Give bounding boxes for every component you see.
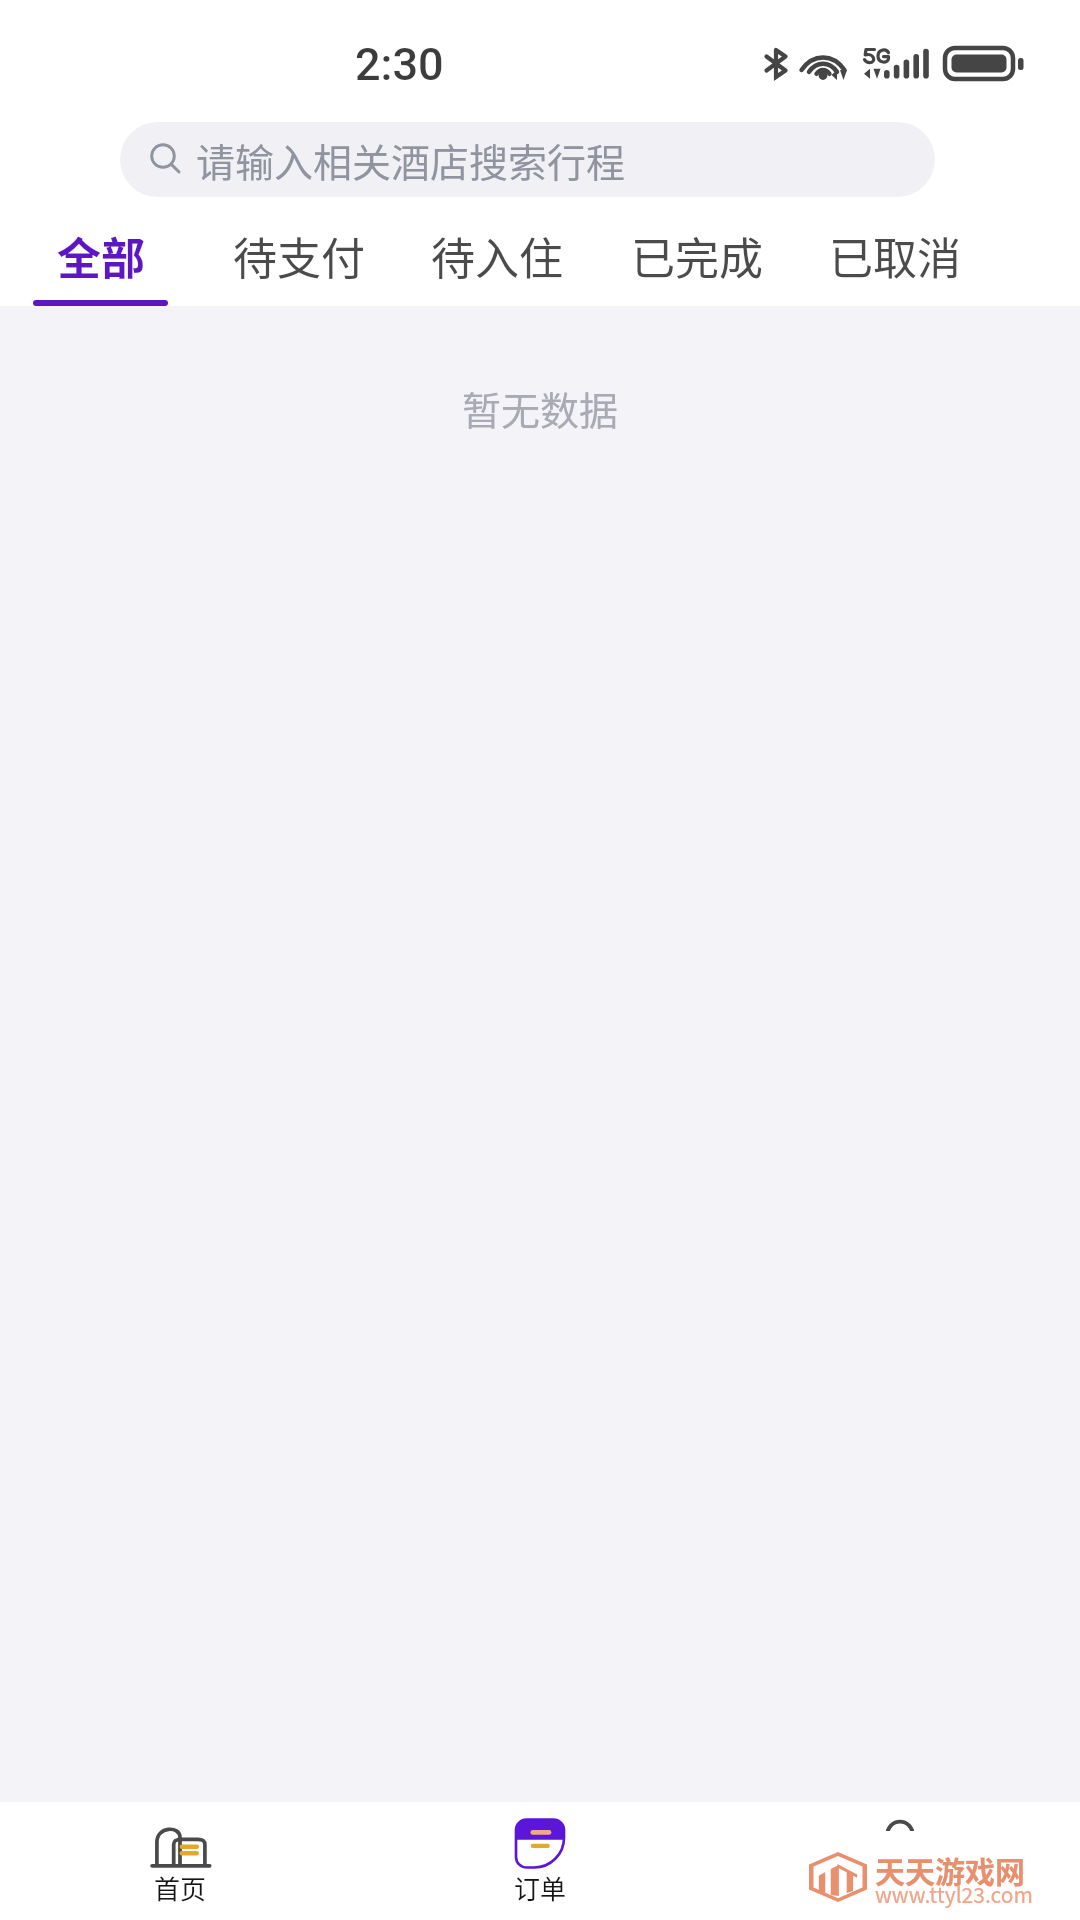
other: Orders xyxy=(510,1819,570,1868)
staticText: 2:30 xyxy=(355,38,444,91)
button[interactable]: 待入住 xyxy=(402,195,592,306)
button[interactable]: 请输入相关酒店搜索行程 xyxy=(120,122,935,197)
staticText: 已取消 xyxy=(829,224,961,288)
button[interactable]: Profile xyxy=(720,1802,1080,1920)
staticText: 待入住 xyxy=(431,224,563,288)
staticText: 订单 xyxy=(514,1869,567,1907)
staticText: 已完成 xyxy=(631,224,763,288)
staticText: 我的 xyxy=(874,1869,927,1907)
button[interactable]: 全部 xyxy=(28,195,174,306)
staticText: 首页 xyxy=(154,1869,207,1907)
button[interactable]: Home xyxy=(0,1802,360,1920)
staticText: 暂无数据 xyxy=(462,380,619,436)
staticText: 天天游戏网 xyxy=(875,1848,1025,1891)
button[interactable]: 待支付 xyxy=(204,195,394,306)
staticText: 全部 xyxy=(57,224,145,288)
button[interactable]: 已取消 xyxy=(800,195,990,306)
staticText: 请输入相关酒店搜索行程 xyxy=(196,132,626,188)
other: Profile xyxy=(870,1819,930,1868)
staticText: www.ttyl23.com xyxy=(875,1879,1033,1909)
button[interactable]: Orders xyxy=(360,1802,720,1920)
button[interactable]: 已完成 xyxy=(602,195,792,306)
other: Home xyxy=(150,1819,210,1868)
staticText: 待支付 xyxy=(233,224,365,288)
